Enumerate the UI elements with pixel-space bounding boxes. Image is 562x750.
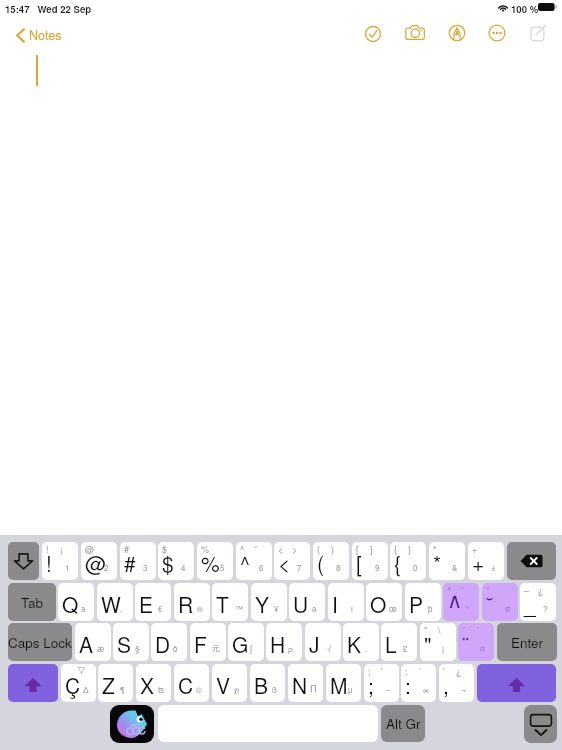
staticText: ?	[543, 603, 548, 614]
staticText: %	[201, 548, 220, 578]
button[interactable]: N	[288, 664, 323, 702]
button[interactable]: Escape	[8, 542, 39, 580]
staticText: Z	[102, 670, 115, 700]
staticText: ^	[240, 548, 250, 578]
button[interactable]: H	[266, 623, 302, 661]
button[interactable]: L	[381, 623, 417, 661]
staticText: Q	[62, 589, 79, 619]
button[interactable]: Switch keyboard	[110, 705, 154, 743]
button[interactable]: J	[305, 623, 341, 661]
button[interactable]: I	[328, 583, 364, 621]
staticText: #	[124, 548, 136, 578]
button[interactable]: F	[190, 623, 226, 661]
button[interactable]: ^	[236, 542, 272, 580]
button[interactable]: T	[212, 583, 248, 621]
button[interactable]: Ç	[61, 664, 96, 702]
button[interactable]: U	[289, 583, 325, 621]
button[interactable]: K	[343, 623, 379, 661]
button[interactable]: Z	[98, 664, 133, 702]
button[interactable]: Hide keyboard	[524, 705, 557, 743]
staticText: #	[124, 543, 130, 556]
button[interactable]: More options	[478, 16, 516, 50]
button[interactable]: O	[366, 583, 402, 621]
staticText: 7	[297, 562, 302, 573]
staticText: @	[85, 548, 107, 578]
button[interactable]: ,	[439, 664, 474, 702]
button[interactable]: {	[390, 542, 426, 580]
staticText: _	[524, 589, 536, 619]
button[interactable]: Markup	[438, 16, 476, 50]
button[interactable]: +	[468, 542, 504, 580]
button[interactable]: Alt Gr	[381, 705, 425, 742]
button[interactable]: $	[158, 542, 194, 580]
button[interactable]: "	[420, 623, 456, 661]
button[interactable]: @	[81, 542, 117, 580]
button[interactable]: Enter	[497, 623, 557, 661]
button[interactable]: M	[326, 664, 361, 702]
button[interactable]: *	[429, 542, 465, 580]
button[interactable]: ¨	[458, 623, 494, 661]
button[interactable]: #	[120, 542, 156, 580]
button[interactable]: Backspace	[507, 542, 556, 580]
staticText: ▽	[78, 665, 85, 675]
button[interactable]: X	[136, 664, 171, 702]
staticText: W	[101, 589, 121, 619]
button[interactable]: :	[401, 664, 436, 702]
staticText: ´	[418, 665, 421, 678]
staticText: Y	[255, 589, 270, 619]
button[interactable]: A	[75, 623, 111, 661]
staticText: @	[85, 543, 95, 556]
staticText: 5	[220, 562, 225, 573]
button[interactable]: P	[405, 583, 441, 621]
button[interactable]: ∧	[443, 583, 479, 621]
staticText: a	[81, 603, 86, 614]
button[interactable]: Camera	[396, 16, 434, 50]
button[interactable]: <	[274, 542, 310, 580]
button[interactable]: Shift	[8, 664, 58, 702]
button[interactable]: Notes	[13, 24, 65, 46]
button[interactable]: R	[174, 583, 210, 621]
button[interactable]: !	[42, 542, 78, 580]
staticText: œ	[389, 603, 397, 614]
button[interactable]: Shift	[477, 664, 556, 702]
staticText: !	[46, 543, 49, 556]
button[interactable]: D	[151, 623, 187, 661]
button[interactable]: B	[250, 664, 285, 702]
button[interactable]: ;	[364, 664, 399, 702]
button[interactable]: Caps Lock	[8, 623, 72, 661]
button[interactable]: E	[135, 583, 171, 621]
staticText: )	[331, 543, 334, 556]
button[interactable]: %	[197, 542, 233, 580]
button[interactable]: Y	[251, 583, 287, 621]
staticText: ß	[272, 684, 277, 695]
button[interactable]: W	[97, 583, 133, 621]
staticText: P	[409, 589, 424, 619]
button[interactable]: _	[520, 583, 556, 621]
staticText: Ç	[65, 670, 81, 700]
button[interactable]: Done	[354, 17, 392, 51]
button[interactable]: [	[352, 542, 388, 580]
button[interactable]: S	[113, 623, 149, 661]
button[interactable]: G	[228, 623, 264, 661]
staticText: I	[332, 589, 338, 619]
button[interactable]: New note	[519, 17, 557, 51]
staticText: B	[254, 670, 269, 700]
staticText: ¡	[60, 543, 63, 556]
button[interactable]: V	[212, 664, 247, 702]
staticText: D	[155, 629, 171, 659]
staticText: ʦ	[158, 684, 165, 695]
button[interactable]: ˘	[482, 583, 518, 621]
button[interactable]: Q	[58, 583, 94, 621]
staticText: &	[452, 562, 458, 573]
staticText: £	[403, 643, 408, 654]
staticText: [	[356, 543, 359, 556]
staticText: €	[158, 603, 163, 614]
button[interactable]: C	[174, 664, 209, 702]
button[interactable]: (	[313, 542, 349, 580]
staticText: +	[472, 543, 478, 556]
staticText: µ	[348, 684, 353, 695]
staticText: U	[293, 589, 309, 619]
staticText: ^	[447, 584, 452, 597]
button[interactable]: Tab	[8, 583, 56, 621]
